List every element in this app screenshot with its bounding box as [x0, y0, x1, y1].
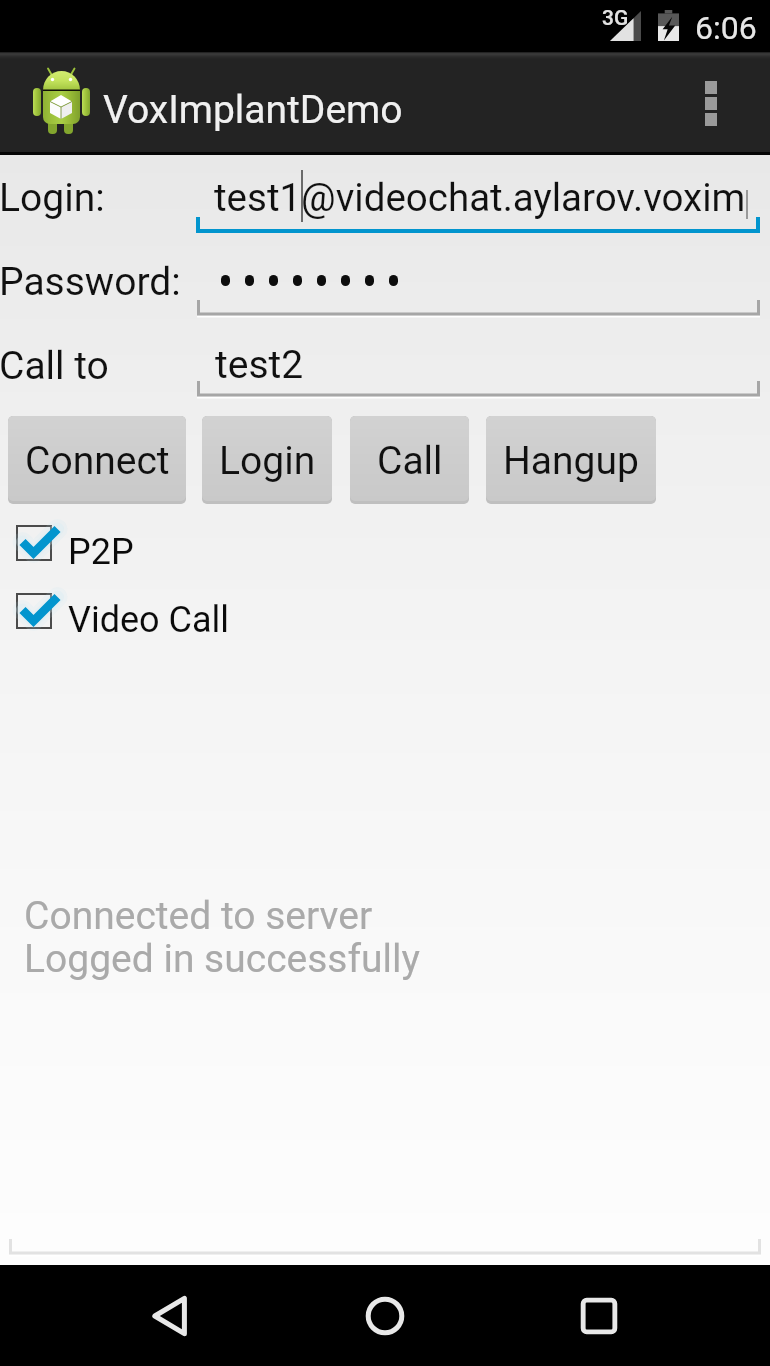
button[interactable]: Call	[350, 416, 469, 504]
button[interactable]: Connect	[8, 416, 186, 504]
staticText: P2P	[68, 531, 134, 573]
button[interactable]: Login	[202, 416, 332, 504]
staticText: 6:06	[695, 9, 757, 47]
staticText: Hangup	[503, 438, 639, 484]
button[interactable]: Recent apps	[534, 1265, 664, 1366]
button[interactable]: More options	[664, 53, 758, 153]
button[interactable]: P2P	[0, 512, 300, 576]
staticText: 3G	[602, 6, 629, 31]
staticText: Video Call	[68, 599, 230, 641]
staticText: VoxImplantDemo	[103, 87, 403, 133]
staticText: test1@videochat.aylarov.voxim	[214, 175, 746, 220]
staticText: Logged in successfully	[24, 936, 420, 982]
button[interactable]: Hangup	[486, 416, 656, 504]
staticText: Login	[219, 438, 316, 484]
staticText: Call to	[0, 343, 109, 389]
staticText: Connected to server	[24, 893, 373, 939]
staticText: test2	[215, 342, 304, 388]
staticText: Password:	[0, 259, 181, 305]
staticText: Login:	[0, 175, 105, 221]
staticText: Connect	[25, 438, 170, 484]
button[interactable]: Back	[105, 1265, 235, 1366]
staticText: Call	[377, 438, 443, 484]
button[interactable]: Home	[320, 1265, 450, 1366]
button[interactable]: Video Call	[0, 580, 300, 644]
